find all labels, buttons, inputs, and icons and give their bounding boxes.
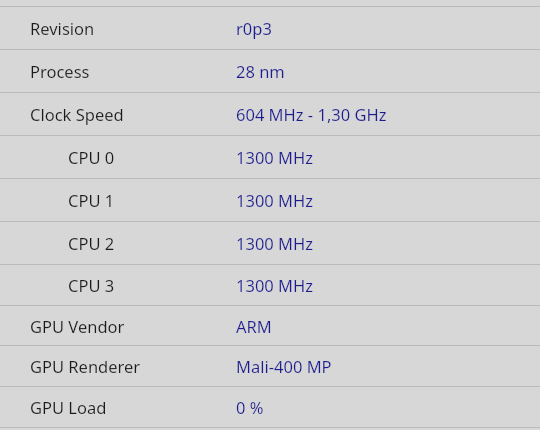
button[interactable]: Clock Speed [0, 93, 540, 135]
staticText: r0p3 [236, 17, 272, 39]
staticText: Mali-400 MP [236, 355, 332, 377]
button[interactable]: CPU 0 [0, 136, 540, 178]
staticText: GPU Vendor [30, 315, 125, 337]
staticText: 28 nm [236, 60, 285, 82]
button[interactable]: CPU 1 [0, 179, 540, 221]
staticText: 1300 MHz [236, 189, 313, 211]
button[interactable]: Revision [0, 7, 540, 49]
button[interactable]: CPU 3 [0, 265, 540, 305]
staticText: 0 % [236, 396, 264, 418]
staticText: CPU 0 [68, 146, 115, 168]
staticText: 1300 MHz [236, 274, 313, 296]
button[interactable]: GPU Renderer [0, 346, 540, 386]
button[interactable]: Process [0, 50, 540, 92]
staticText: 604 MHz - 1,30 GHz [236, 103, 387, 125]
staticText: Revision [30, 17, 95, 39]
staticText: 1300 MHz [236, 146, 313, 168]
staticText: Process [30, 60, 90, 82]
staticText: CPU 2 [68, 232, 115, 254]
staticText: CPU 3 [68, 274, 115, 296]
button[interactable]: CPU 2 [0, 222, 540, 264]
staticText: Clock Speed [30, 103, 124, 125]
staticText: GPU Load [30, 396, 107, 418]
staticText: GPU Renderer [30, 355, 141, 377]
staticText: CPU 1 [68, 189, 115, 211]
staticText: ARM [236, 315, 272, 337]
button[interactable]: GPU Load [0, 387, 540, 427]
button[interactable]: GPU Vendor [0, 306, 540, 345]
staticText: 1300 MHz [236, 232, 313, 254]
